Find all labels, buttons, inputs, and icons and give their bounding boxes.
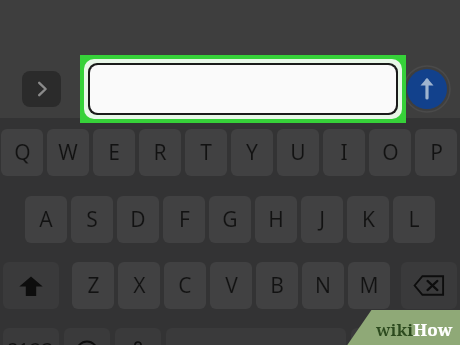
button[interactable]: Expand <box>22 71 61 107</box>
staticText: P <box>430 138 443 167</box>
staticText: L <box>408 205 420 234</box>
staticText: N <box>315 271 331 300</box>
staticText: wikiHow <box>376 318 453 341</box>
button[interactable]: Backspace <box>401 262 457 309</box>
staticText: D <box>130 205 146 234</box>
button[interactable]: K <box>347 196 389 243</box>
staticText: J <box>319 205 325 234</box>
button[interactable]: E <box>93 129 135 176</box>
staticText: Y <box>246 138 258 167</box>
staticText: V <box>225 271 238 300</box>
button[interactable]: Q <box>1 129 43 176</box>
staticText: ?123 <box>8 337 54 345</box>
staticText: K <box>362 205 375 234</box>
button[interactable]: ?123 <box>3 328 59 345</box>
staticText: W <box>58 138 78 167</box>
staticText: A <box>39 205 53 234</box>
staticText: I <box>340 138 348 167</box>
button[interactable]: C <box>164 262 206 309</box>
button[interactable]: D <box>117 196 159 243</box>
staticText: Q <box>14 138 31 167</box>
button[interactable]: V <box>210 262 252 309</box>
staticText: S <box>86 205 98 234</box>
button[interactable]: N <box>302 262 344 309</box>
button[interactable]: Emoji <box>64 328 110 345</box>
button[interactable]: Message field highlight <box>80 55 406 123</box>
staticText: E <box>108 138 120 167</box>
button[interactable]: L <box>393 196 435 243</box>
button[interactable]: A <box>25 196 67 243</box>
button[interactable]: Send <box>404 66 450 112</box>
button[interactable]: X <box>118 262 160 309</box>
button[interactable]: W <box>47 129 89 176</box>
button[interactable]: . <box>351 328 397 345</box>
button[interactable]: J <box>301 196 343 243</box>
staticText: C <box>178 271 192 300</box>
button[interactable]: H <box>255 196 297 243</box>
button[interactable]: Y <box>231 129 273 176</box>
button[interactable]: S <box>71 196 113 243</box>
button[interactable] <box>88 63 398 115</box>
button[interactable]: T <box>185 129 227 176</box>
button[interactable]: F <box>163 196 205 243</box>
staticText: Z <box>87 271 100 300</box>
button[interactable]: O <box>369 129 411 176</box>
button[interactable]: R <box>139 129 181 176</box>
button[interactable]: U <box>277 129 319 176</box>
staticText: G <box>222 205 238 234</box>
staticText: B <box>270 271 284 300</box>
staticText: H <box>268 205 284 234</box>
staticText: R <box>153 138 167 167</box>
staticText: X <box>133 271 146 300</box>
button[interactable]: B <box>256 262 298 309</box>
staticText: O <box>382 138 399 167</box>
button[interactable]: M <box>348 262 390 309</box>
button[interactable]: G <box>209 196 251 243</box>
staticText: U <box>290 138 306 167</box>
staticText: F <box>179 205 190 234</box>
staticText: M <box>359 271 379 300</box>
button[interactable]: P <box>415 129 457 176</box>
staticText: T <box>200 138 212 167</box>
button[interactable]: Shift <box>3 262 59 309</box>
button[interactable]: I <box>323 129 365 176</box>
button[interactable]: Z <box>72 262 114 309</box>
button[interactable]: Voice input <box>115 328 161 345</box>
